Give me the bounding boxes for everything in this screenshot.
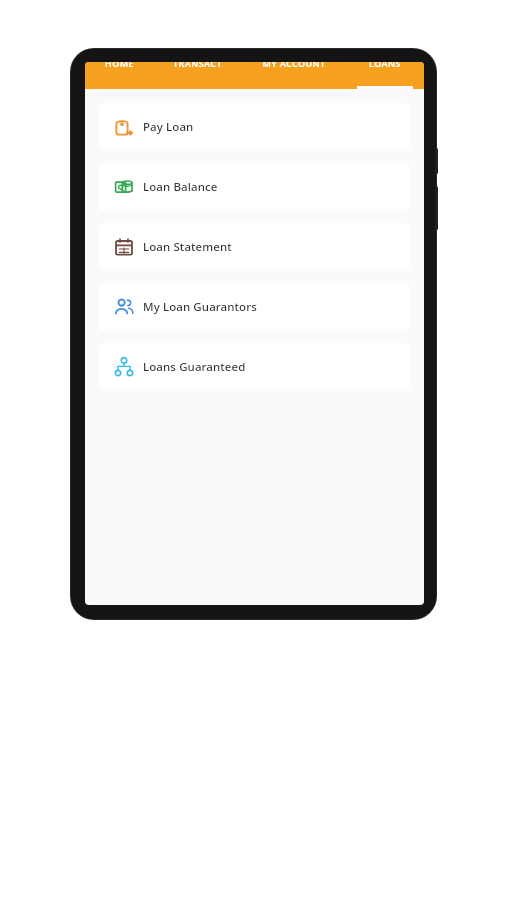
button[interactable]: My Loan Guarantors — [99, 283, 410, 331]
staticText: MY ACCOUNT — [262, 62, 326, 69]
staticText: Loans Guaranteed — [143, 359, 246, 375]
button[interactable]: Loan Balance — [99, 163, 410, 211]
staticText: My Loan Guarantors — [143, 299, 257, 315]
button[interactable]: HOME — [85, 62, 153, 89]
button[interactable]: MY ACCOUNT — [241, 62, 346, 89]
button[interactable]: TRANSACT — [153, 62, 241, 89]
staticText: Loan Statement — [143, 239, 232, 255]
staticText: Pay Loan — [143, 119, 194, 135]
button[interactable]: Loan Statement — [99, 223, 410, 271]
button[interactable]: Pay Loan — [99, 103, 410, 151]
button[interactable]: Loans Guaranteed — [99, 343, 410, 391]
button[interactable]: LOANS — [346, 62, 424, 89]
staticText: HOME — [105, 62, 134, 69]
staticText: TRANSACT — [173, 62, 222, 69]
staticText: LOANS — [369, 62, 401, 69]
staticText: Loan Balance — [143, 179, 218, 195]
